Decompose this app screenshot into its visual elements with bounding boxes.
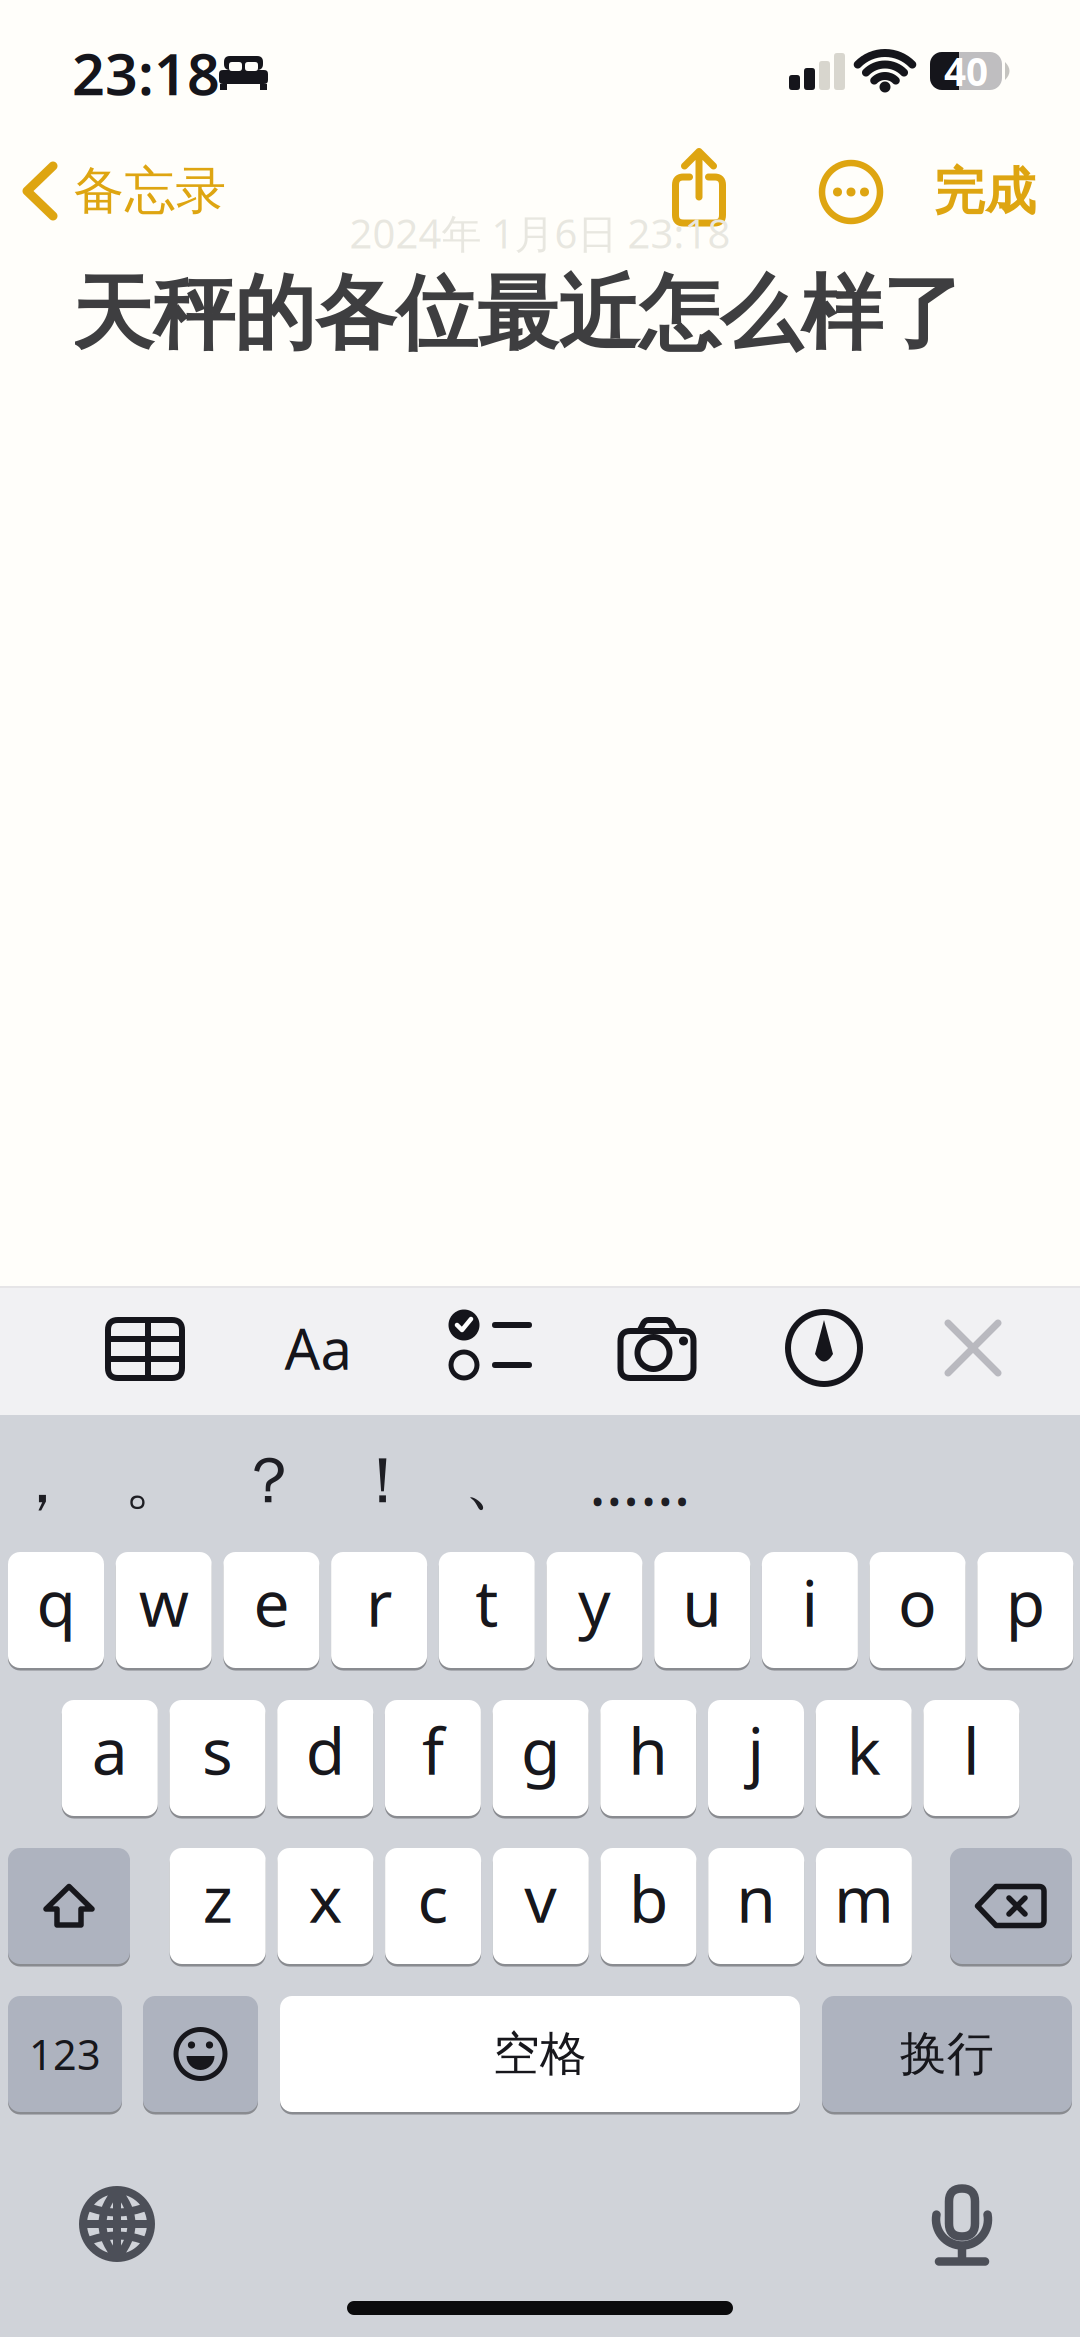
staticText: 。 (124, 1442, 188, 1520)
button[interactable]: r (331, 1550, 427, 1669)
staticText: r (366, 1559, 392, 1644)
staticText: 天秤的各位最近怎么样了 (72, 264, 963, 364)
button[interactable]: z (170, 1846, 266, 1965)
button[interactable]: q (8, 1550, 104, 1669)
button[interactable] (602, 1294, 712, 1404)
button[interactable] (950, 1846, 1072, 1965)
staticText: 备忘录 (73, 160, 226, 222)
button[interactable] (659, 145, 739, 231)
button[interactable]: i (762, 1550, 858, 1669)
button[interactable]: 、 (444, 1431, 548, 1531)
button[interactable]: b (600, 1846, 696, 1965)
button[interactable]: y (546, 1550, 642, 1669)
button[interactable]: x (277, 1846, 373, 1965)
staticText: 空格 (493, 2025, 587, 2083)
staticText: j (747, 1707, 764, 1792)
button[interactable]: o (870, 1550, 966, 1669)
staticText: c (418, 1855, 449, 1940)
staticText: l (963, 1707, 980, 1792)
button[interactable]: e (223, 1550, 319, 1669)
staticText: t (475, 1559, 498, 1644)
button[interactable]: u (654, 1550, 750, 1669)
button[interactable]: t (439, 1550, 535, 1669)
button[interactable] (815, 156, 887, 228)
button[interactable]: k (816, 1698, 912, 1817)
staticText: b (629, 1855, 668, 1940)
button[interactable]: 123 (8, 1994, 122, 2113)
staticText: ， (10, 1442, 74, 1520)
button[interactable]: ？ (217, 1431, 321, 1531)
staticText: 、 (464, 1442, 528, 1520)
staticText: 2024年 1月6日 23:18 (349, 206, 730, 259)
staticText: 换行 (900, 2025, 994, 2083)
button[interactable]: 备忘录 (0, 151, 240, 231)
button[interactable]: Aa (263, 1293, 373, 1403)
staticText: s (202, 1707, 233, 1792)
button[interactable]: d (277, 1698, 373, 1817)
staticText: Aa (284, 1311, 351, 1385)
button[interactable] (62, 2169, 172, 2279)
staticText: p (1006, 1559, 1045, 1644)
staticText: z (203, 1855, 233, 1940)
button[interactable]: p (977, 1550, 1073, 1669)
button[interactable]: f (385, 1698, 481, 1817)
button[interactable]: a (62, 1698, 158, 1817)
staticText: v (524, 1855, 557, 1940)
button[interactable]: l (923, 1698, 1019, 1817)
staticText: ！ (351, 1442, 415, 1520)
staticText: 23:18 (72, 35, 220, 111)
button[interactable] (907, 2170, 1017, 2280)
button[interactable]: ！ (331, 1431, 435, 1531)
staticText: d (306, 1707, 345, 1792)
button[interactable]: c (385, 1846, 481, 1965)
staticText: g (521, 1707, 560, 1792)
button[interactable] (769, 1293, 879, 1403)
staticText: ？ (237, 1442, 301, 1520)
button[interactable]: …… (588, 1431, 692, 1531)
button[interactable] (918, 1293, 1028, 1403)
staticText: q (36, 1559, 75, 1644)
staticText: i (801, 1559, 818, 1644)
button[interactable] (437, 1293, 547, 1403)
button[interactable]: v (493, 1846, 589, 1965)
button[interactable]: 完成 (920, 152, 1050, 232)
staticText: k (847, 1707, 881, 1792)
staticText: o (898, 1559, 937, 1644)
staticText: 40 (944, 45, 988, 97)
button[interactable]: ， (0, 1431, 94, 1531)
staticText: 完成 (934, 161, 1036, 223)
button[interactable]: w (116, 1550, 212, 1669)
button[interactable]: 换行 (822, 1994, 1072, 2113)
staticText: …… (589, 1438, 691, 1523)
staticText: e (253, 1559, 289, 1644)
button[interactable]: 。 (104, 1431, 208, 1531)
staticText: f (422, 1707, 444, 1792)
button[interactable]: 空格 (280, 1994, 800, 2113)
staticText: h (628, 1707, 668, 1792)
staticText: n (736, 1855, 776, 1940)
button[interactable]: m (816, 1846, 912, 1965)
button[interactable]: j (708, 1698, 804, 1817)
button[interactable]: h (600, 1698, 696, 1817)
button[interactable] (8, 1846, 130, 1965)
staticText: u (682, 1559, 722, 1644)
button[interactable] (90, 1294, 200, 1404)
staticText: x (308, 1855, 342, 1940)
staticText: a (92, 1707, 128, 1792)
button[interactable] (143, 1994, 258, 2113)
staticText: 123 (29, 2027, 101, 2081)
button[interactable]: s (169, 1698, 265, 1817)
staticText: m (834, 1855, 894, 1940)
staticText: y (578, 1559, 611, 1644)
button[interactable]: g (493, 1698, 589, 1817)
staticText: w (139, 1559, 189, 1644)
button[interactable]: n (708, 1846, 804, 1965)
